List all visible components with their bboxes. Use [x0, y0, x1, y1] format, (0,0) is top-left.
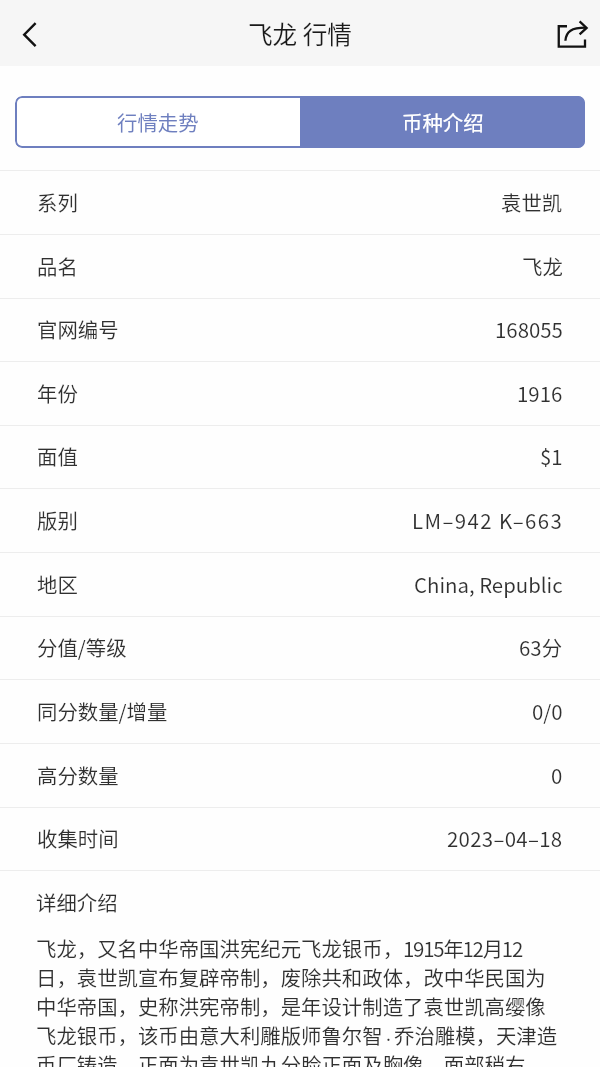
- staticText: 飞龙: [522, 251, 563, 281]
- button[interactable]: 币种介绍: [300, 96, 585, 148]
- button[interactable]: 系列: [0, 171, 600, 234]
- staticText: 飞龙 行情: [248, 15, 352, 51]
- button[interactable]: 行情走势: [15, 96, 300, 148]
- button[interactable]: Share: [544, 0, 600, 66]
- button[interactable]: Back: [0, 0, 52, 66]
- staticText: 品名: [37, 251, 78, 281]
- staticText: 2023–04–18: [447, 823, 563, 853]
- staticText: 年份: [37, 378, 78, 408]
- staticText: 分值/等级: [37, 632, 127, 662]
- staticText: 1916: [517, 378, 563, 408]
- button[interactable]: 高分数量: [0, 744, 600, 807]
- staticText: 官网编号: [37, 314, 119, 344]
- button[interactable]: 官网编号: [0, 299, 600, 361]
- staticText: 袁世凯: [501, 187, 563, 217]
- staticText: 版别: [37, 505, 78, 535]
- button[interactable]: 地区: [0, 553, 600, 616]
- staticText: $1: [540, 441, 563, 471]
- staticText: 详细介绍: [36, 887, 118, 917]
- button[interactable]: 品名: [0, 235, 600, 298]
- staticText: 地区: [37, 569, 78, 599]
- staticText: China, Republic: [414, 569, 563, 599]
- button[interactable]: 分值/等级: [0, 617, 600, 679]
- button[interactable]: 年份: [0, 362, 600, 425]
- staticText: 行情走势: [117, 107, 199, 137]
- staticText: 收集时间: [37, 823, 119, 853]
- button[interactable]: 收集时间: [0, 808, 600, 870]
- staticText: 0: [551, 760, 563, 790]
- button[interactable]: 版别: [0, 489, 600, 552]
- staticText: 面值: [37, 441, 78, 471]
- staticText: 系列: [37, 187, 78, 217]
- button[interactable]: 同分数量/增量: [0, 680, 600, 743]
- staticText: 币种介绍: [402, 107, 484, 137]
- button[interactable]: 面值: [0, 426, 600, 488]
- staticText: LM–942 K–663: [412, 505, 564, 535]
- staticText: 同分数量/增量: [37, 696, 168, 726]
- staticText: 168055: [495, 314, 563, 344]
- staticText: 高分数量: [37, 760, 119, 790]
- staticText: 63分: [519, 632, 563, 662]
- staticText: 0/0: [532, 696, 563, 726]
- staticText: 飞龙，又名中华帝国洪宪纪元飞龙银币，1915年12月12 日，袁世凯宣布复辟帝制…: [36, 933, 558, 1067]
